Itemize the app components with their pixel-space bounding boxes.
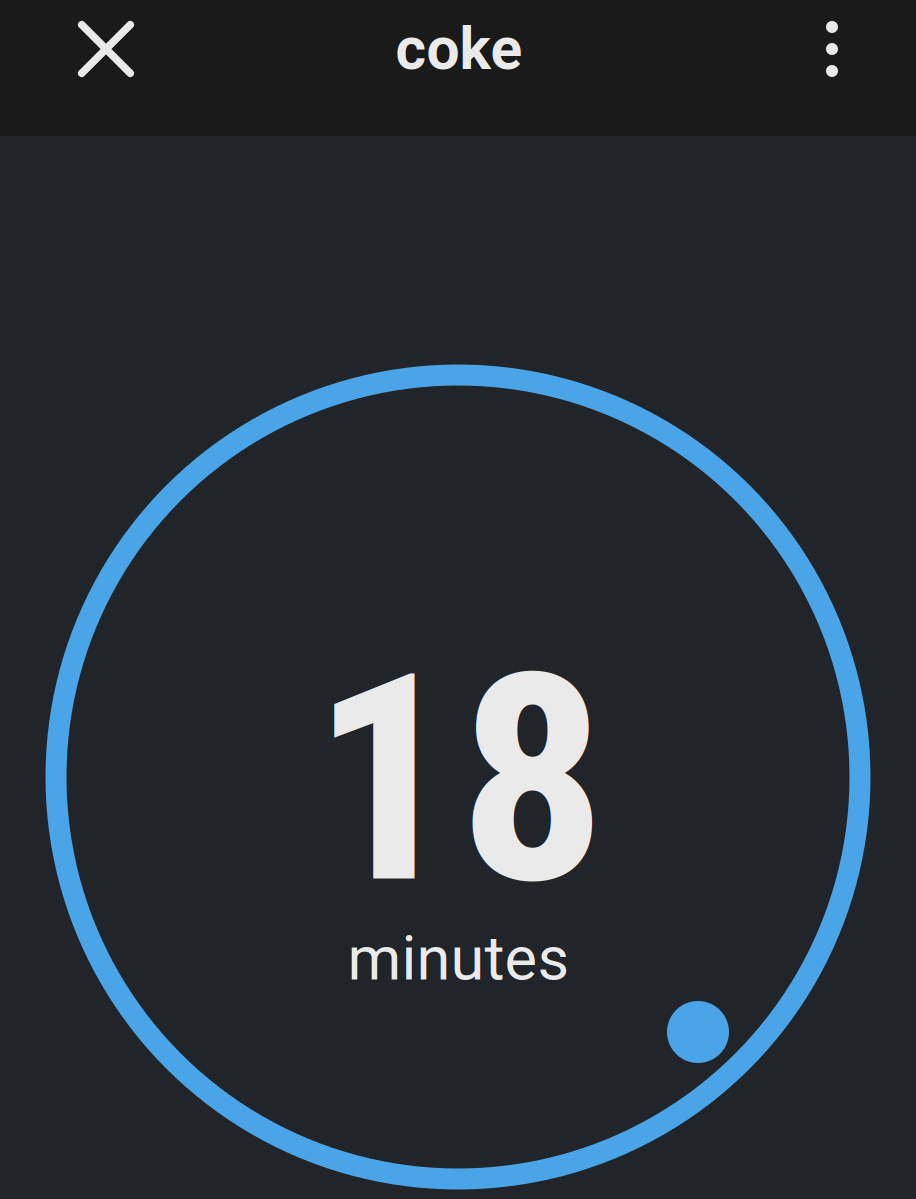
staticText: minutes	[347, 923, 569, 994]
button[interactable]: Timer duration, 18 minutes	[45, 364, 870, 1189]
button[interactable]: More options	[776, 0, 888, 105]
staticText: coke	[395, 15, 522, 83]
staticText: 18	[312, 611, 606, 949]
button[interactable]: Close	[46, 0, 166, 105]
